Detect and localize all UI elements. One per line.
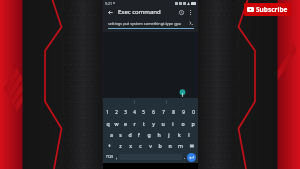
staticText: h [157,131,161,138]
staticText: w [114,120,119,127]
button[interactable]: r [130,118,139,129]
staticText: b [158,142,162,149]
button[interactable]: p [188,118,198,129]
staticText: z [119,142,122,149]
staticText: 7 [162,109,165,115]
staticText: 2 [115,109,118,115]
staticText: j [168,131,170,138]
button[interactable]: o [178,118,188,129]
button[interactable]: j [164,129,174,140]
staticText: 9 [182,109,185,115]
staticText: o [181,120,185,127]
staticText: 5 [142,109,145,115]
staticText: Subscribe [256,5,288,14]
button[interactable]: ?123 [105,152,114,162]
staticText: k [178,131,181,138]
button[interactable]: b [155,140,165,151]
staticText: 9:21 [105,1,112,6]
staticText: Exec command [118,8,161,16]
staticText: d [128,131,132,138]
button[interactable] [134,98,166,106]
staticText: , [116,154,118,160]
staticText: . [184,154,186,160]
button[interactable]: f [134,129,144,140]
button[interactable]: History [177,8,186,17]
staticText: t [143,120,145,127]
button[interactable]: Backspace [185,140,198,151]
button[interactable]: u [158,118,168,129]
staticText: 0 [192,109,195,115]
staticText: g [147,131,151,138]
button[interactable]: Comma [114,152,119,162]
staticText: x [129,142,132,149]
staticText: u [161,120,165,127]
staticText: 6 [152,109,155,115]
button[interactable]: x [125,140,135,151]
button[interactable]: 8 [168,106,178,118]
button[interactable]: Enter [187,153,196,162]
staticText: e [124,120,127,127]
staticText: m [178,142,183,149]
staticText: 3 [124,109,127,115]
button[interactable]: Subscribe [244,3,291,16]
staticText: a [110,131,113,138]
staticText: settings put system somethingt.type gpu [108,21,187,26]
button[interactable]: 7 [158,106,168,118]
button[interactable]: k [174,129,184,140]
staticText: 8 [172,109,175,115]
button[interactable]: 5 [139,106,148,118]
button[interactable]: 1 [103,106,112,118]
button[interactable]: s [116,129,125,140]
button[interactable]: Run command [188,20,194,26]
button[interactable]: 3 [121,106,130,118]
button[interactable]: h [154,129,164,140]
staticText: r [133,120,136,127]
button[interactable]: z [115,140,125,151]
button[interactable]: 6 [148,106,158,118]
staticText: 4 [133,109,136,115]
staticText: ?123 [106,155,113,159]
staticText: v [149,142,152,149]
staticText: s [119,131,122,138]
button[interactable]: c [135,140,145,151]
staticText: y [152,120,155,127]
button[interactable]: y [148,118,158,129]
button[interactable] [166,98,198,106]
staticText: c [139,142,142,149]
button[interactable]: More options [186,8,195,17]
staticText: l [188,131,190,138]
button[interactable]: l [184,129,194,140]
button[interactable]: 4 [130,106,139,118]
button[interactable]: w [112,118,121,129]
button[interactable]: d [125,129,134,140]
staticText: i [172,120,174,127]
button[interactable]: Period [182,152,187,162]
button[interactable]: 0 [188,106,198,118]
button[interactable]: q [103,118,112,129]
button[interactable]: Back [106,8,115,17]
button[interactable]: a [107,129,116,140]
button[interactable]: Shift [103,140,115,151]
staticText: p [191,120,195,127]
button[interactable]: t [139,118,148,129]
staticText: n [168,142,172,149]
button[interactable]: e [121,118,130,129]
staticText: f [138,131,140,138]
button[interactable]: g [144,129,154,140]
button[interactable]: 9 [178,106,188,118]
staticText: q [106,120,110,127]
button[interactable]: m [175,140,185,151]
staticText: 1 [106,109,109,115]
button[interactable]: 2 [112,106,121,118]
button[interactable]: n [165,140,175,151]
button[interactable]: i [168,118,178,129]
button[interactable]: v [145,140,155,151]
